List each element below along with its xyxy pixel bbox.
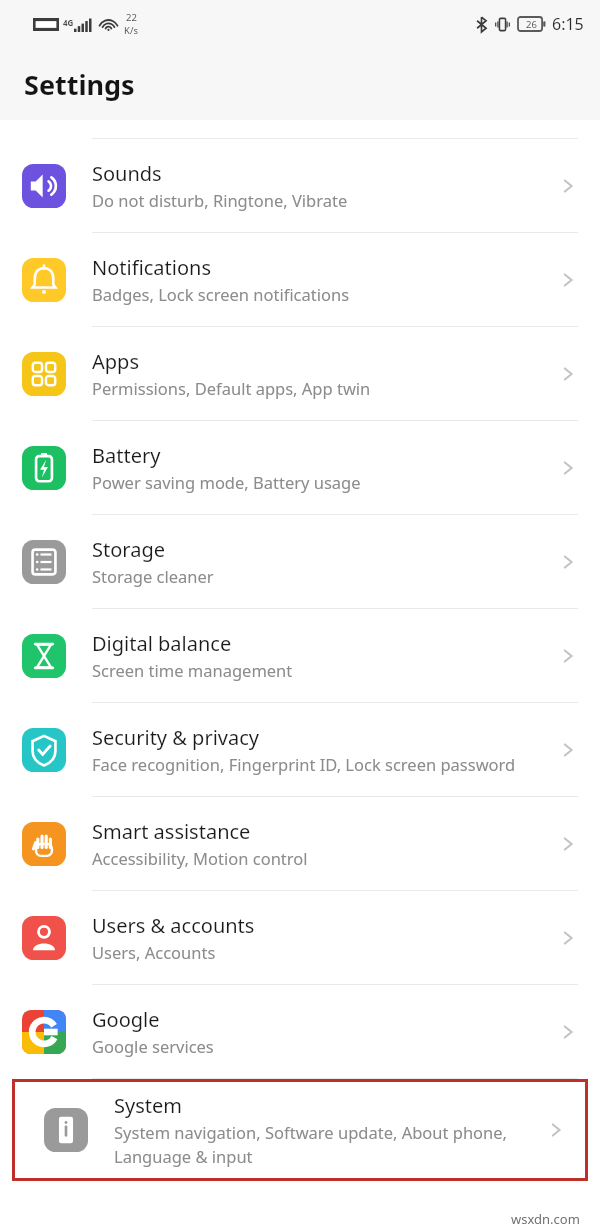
button[interactable]: Storage	[0, 515, 600, 608]
button[interactable]: Security & privacy	[0, 703, 600, 796]
staticText: Permissions, Default apps, App twin	[92, 377, 371, 399]
staticText: Battery	[92, 442, 161, 469]
staticText: Accessibility, Motion control	[92, 847, 308, 869]
staticText: System navigation, Software update, Abou…	[114, 1121, 538, 1168]
staticText: System	[114, 1092, 182, 1119]
button[interactable]: Google	[0, 985, 600, 1078]
staticText: Face recognition, Fingerprint ID, Lock s…	[92, 753, 516, 775]
staticText: Users, Accounts	[92, 941, 216, 963]
button[interactable]: Users & accounts	[0, 891, 600, 984]
staticText: Smart assistance	[92, 818, 251, 845]
staticText: Users & accounts	[92, 912, 255, 939]
staticText: 22	[126, 11, 137, 24]
button[interactable]: Battery	[0, 421, 600, 514]
button[interactable]: Apps	[0, 327, 600, 420]
staticText: 6:15	[552, 13, 584, 35]
staticText: Digital balance	[92, 630, 232, 657]
staticText: Do not disturb, Ringtone, Vibrate	[92, 189, 348, 211]
button[interactable]: Notifications	[0, 233, 600, 326]
staticText: K/s	[124, 24, 138, 37]
staticText: Settings	[24, 66, 135, 103]
staticText: Screen time management	[92, 659, 293, 681]
staticText: wsxdn.com	[511, 1210, 580, 1228]
staticText: 4G	[63, 17, 74, 28]
staticText: Storage cleaner	[92, 565, 214, 587]
staticText: Badges, Lock screen notifications	[92, 283, 350, 305]
staticText: Security & privacy	[92, 724, 259, 751]
staticText: Storage	[92, 536, 165, 563]
staticText: Apps	[92, 348, 139, 375]
staticText: Power saving mode, Battery usage	[92, 471, 361, 493]
staticText: Sounds	[92, 160, 162, 187]
button[interactable]: Smart assistance	[0, 797, 600, 890]
button[interactable]: System	[12, 1079, 588, 1181]
staticText: Google	[92, 1006, 160, 1033]
staticText: Google services	[92, 1035, 214, 1057]
staticText: Notifications	[92, 254, 211, 281]
staticText: 26	[526, 18, 537, 31]
button[interactable]: Sounds	[0, 139, 600, 232]
button[interactable]: Digital balance	[0, 609, 600, 702]
